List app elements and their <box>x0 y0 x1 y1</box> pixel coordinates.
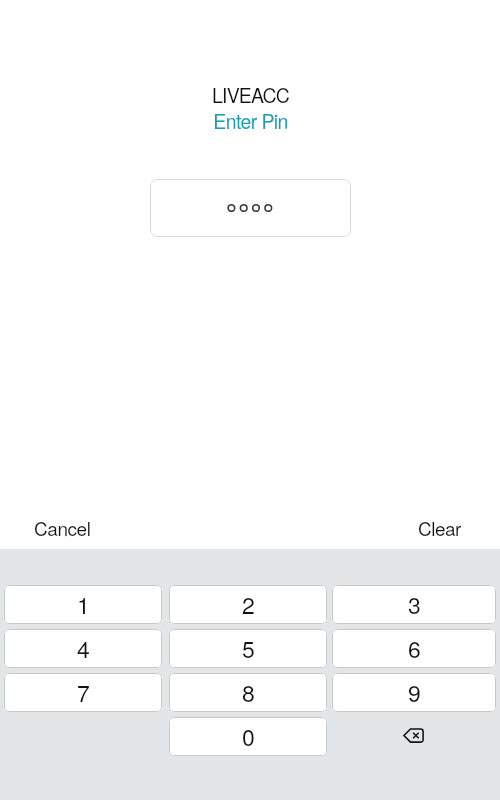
button[interactable]: 9 <box>332 673 496 712</box>
button[interactable]: 3 <box>332 585 496 624</box>
staticText: 1 <box>77 588 90 621</box>
staticText: 3 <box>408 588 421 621</box>
staticText: 6 <box>408 632 421 665</box>
staticText: 9 <box>408 676 421 709</box>
button[interactable]: Cancel <box>23 508 102 547</box>
button[interactable]: 2 <box>169 585 327 624</box>
staticText: Cancel <box>34 514 91 541</box>
button[interactable]: Backspace <box>332 717 496 756</box>
staticText: LIVEACC <box>212 81 289 109</box>
button[interactable]: 0 <box>169 717 327 756</box>
staticText: 5 <box>242 632 255 665</box>
staticText: 2 <box>242 588 255 621</box>
button[interactable]: 1 <box>4 585 162 624</box>
button[interactable]: 8 <box>169 673 327 712</box>
staticText: 7 <box>77 676 90 709</box>
staticText: Clear <box>418 514 461 541</box>
button[interactable]: 6 <box>332 629 496 668</box>
button[interactable]: 7 <box>4 673 162 712</box>
staticText: Enter Pin <box>213 107 288 135</box>
staticText: 4 <box>77 632 90 665</box>
button[interactable]: Pin field <box>150 179 351 237</box>
button[interactable]: 4 <box>4 629 162 668</box>
button[interactable]: 5 <box>169 629 327 668</box>
staticText: 0 <box>242 720 255 753</box>
button[interactable]: Clear <box>407 508 472 547</box>
staticText: 8 <box>242 676 255 709</box>
